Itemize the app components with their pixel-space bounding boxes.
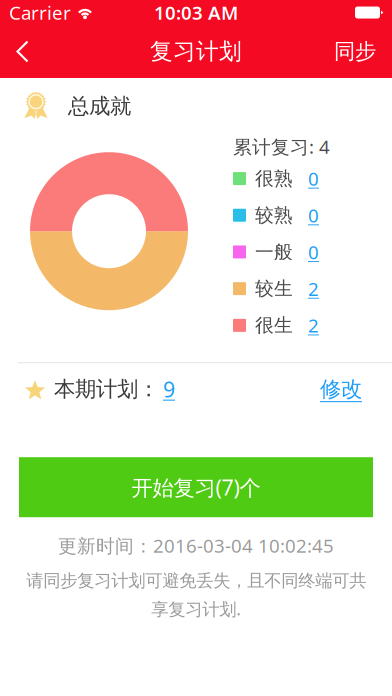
button[interactable]: 0 — [293, 235, 319, 269]
button[interactable]: 修改 — [316, 370, 366, 408]
button[interactable]: 同步 — [316, 25, 392, 78]
staticText: 0 — [308, 240, 319, 264]
staticText: 较熟 — [255, 204, 293, 227]
staticText: 复习计划 — [150, 38, 242, 65]
staticText: 总成就 — [68, 93, 131, 119]
staticText: 较生 — [255, 277, 293, 300]
staticText: 0 — [308, 166, 319, 191]
button[interactable]: 0 — [293, 198, 319, 233]
staticText: 9 — [163, 375, 175, 403]
staticText: Carrier — [9, 0, 71, 25]
staticText: 更新时间：2016-03-04 10:02:45 — [58, 533, 334, 558]
staticText: 一般 — [255, 240, 293, 263]
staticText: 本期计划： — [54, 376, 159, 402]
staticText: 修改 — [320, 376, 362, 402]
staticText: 0 — [308, 203, 319, 228]
staticText: 请同步复习计划可避免丢失，且不同终端可共享复习计划. — [26, 570, 366, 620]
staticText: 同步 — [334, 38, 376, 65]
button[interactable]: Back — [0, 25, 50, 78]
staticText: 10:03 AM — [154, 0, 238, 25]
button[interactable]: 2 — [293, 308, 319, 343]
button[interactable]: 2 — [293, 271, 319, 306]
button[interactable]: 9 — [159, 369, 179, 409]
staticText: 很熟 — [255, 167, 293, 190]
staticText: 2 — [308, 276, 319, 301]
button[interactable]: 0 — [293, 161, 319, 196]
button[interactable]: 开始复习(7)个 — [19, 457, 373, 517]
staticText: 很生 — [255, 314, 293, 337]
staticText: 累计复习: 4 — [233, 134, 330, 159]
staticText: 开始复习(7)个 — [131, 473, 260, 501]
staticText: 2 — [308, 313, 319, 338]
